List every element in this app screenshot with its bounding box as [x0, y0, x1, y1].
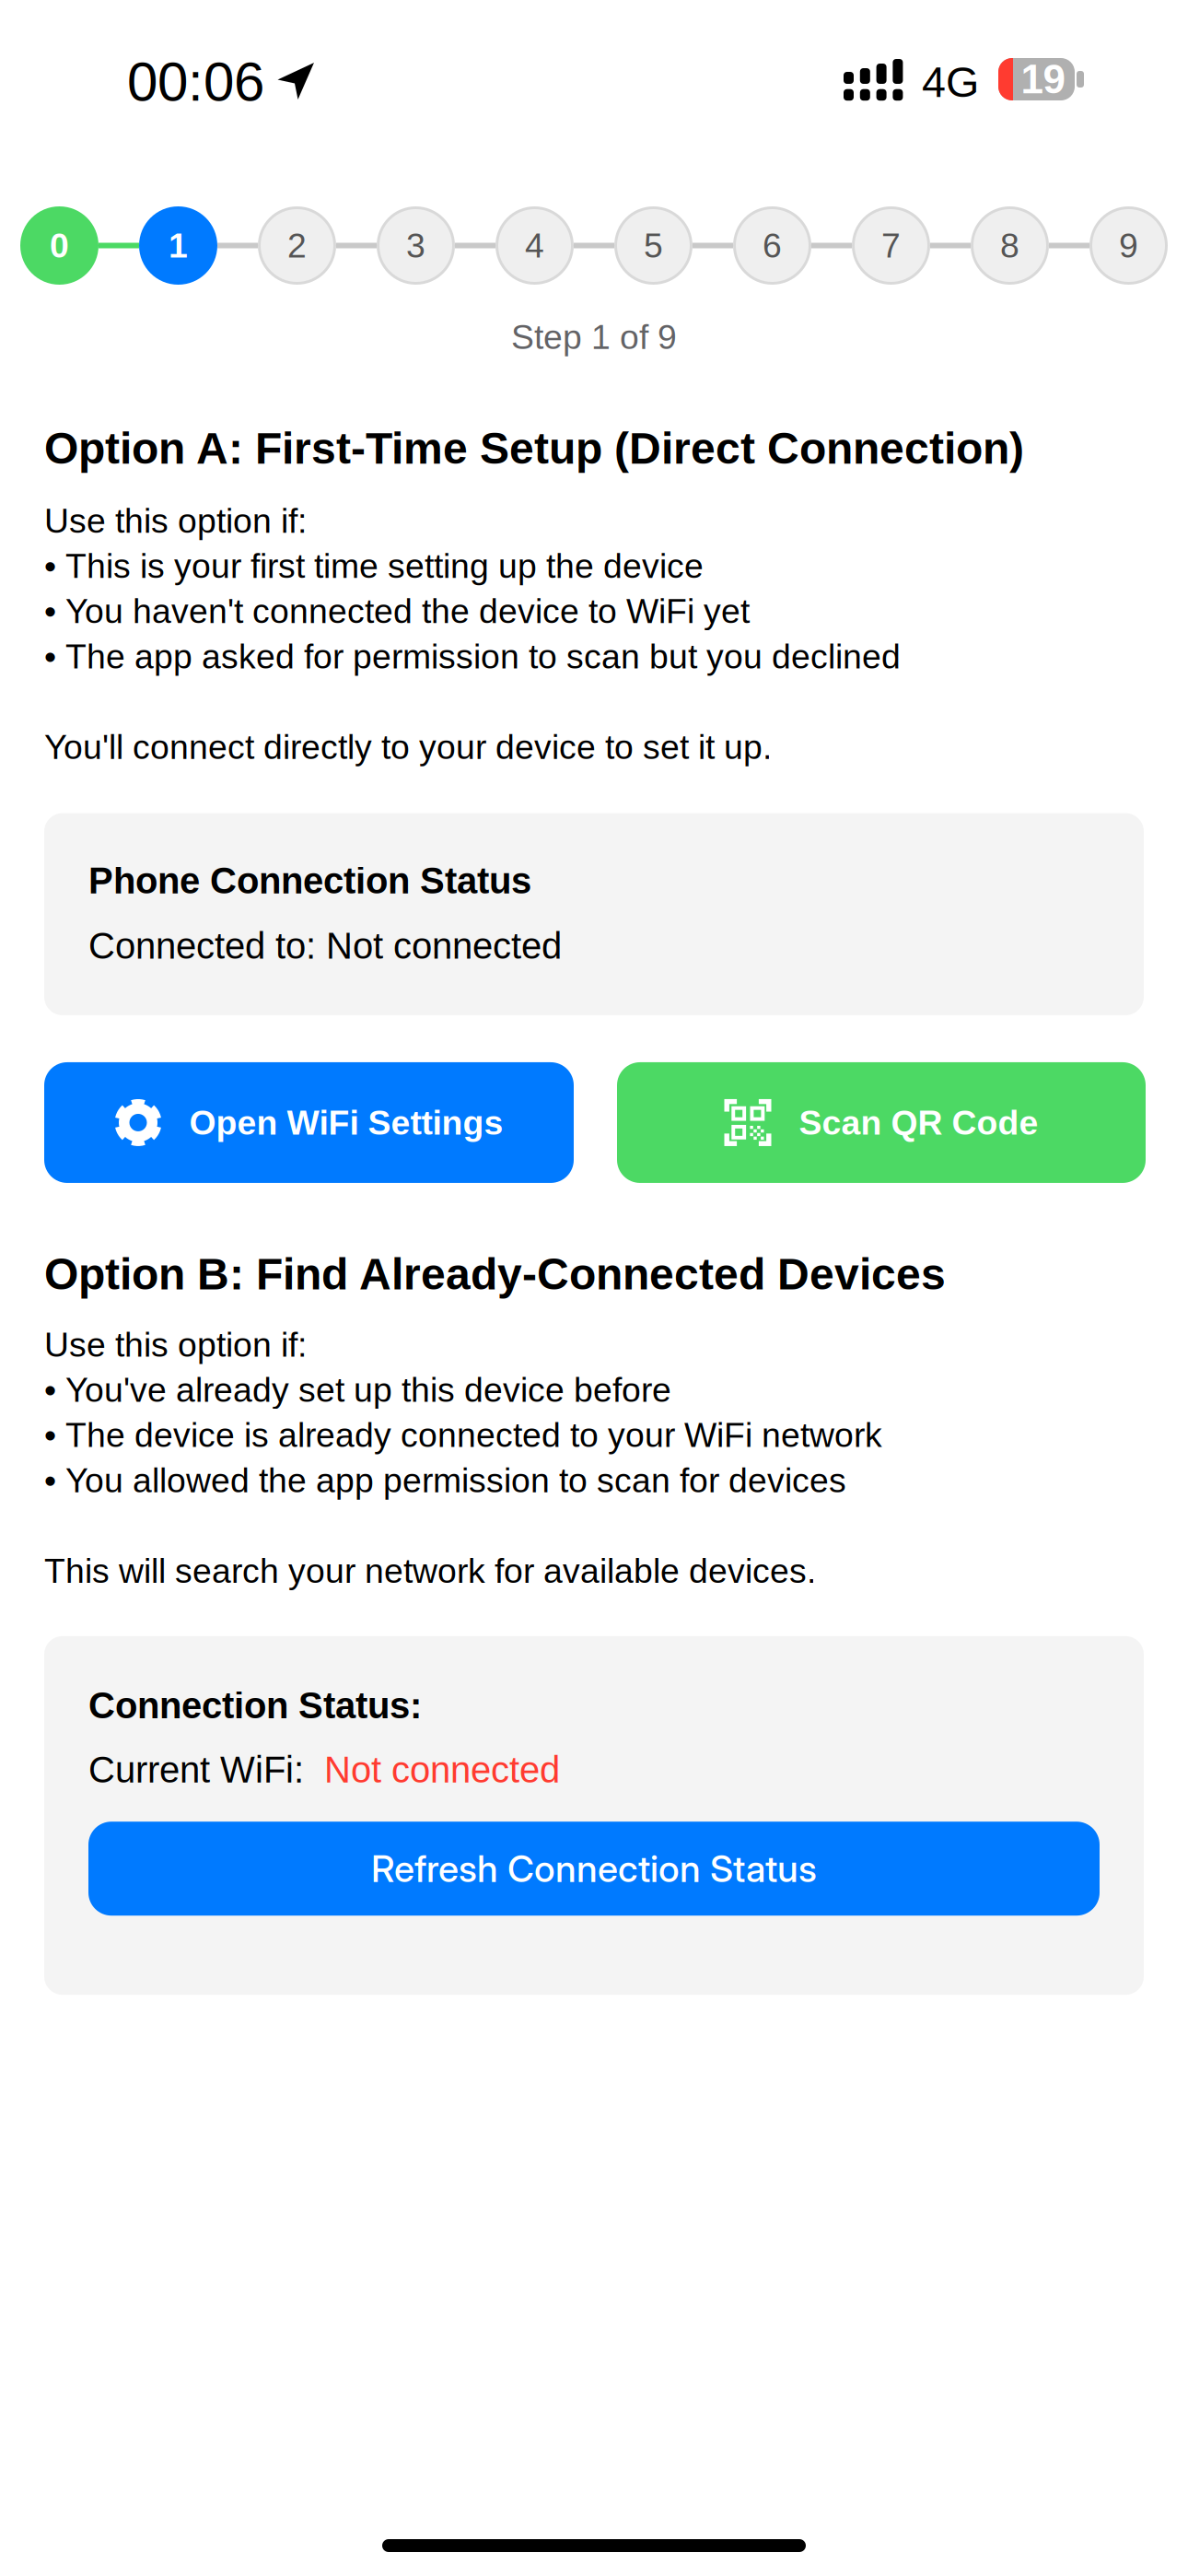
staticText: 7	[881, 226, 901, 265]
staticText: Option B: Find Already-Connected Devices	[44, 1249, 946, 1299]
staticText: Phone Connection Status	[88, 860, 531, 901]
staticText: Not connected	[324, 1749, 560, 1790]
staticText: Refresh Connection Status	[371, 1846, 817, 1891]
staticText: Current WiFi:	[88, 1749, 324, 1790]
staticText: Scan QR Code	[799, 1103, 1038, 1142]
staticText: 0	[50, 226, 69, 265]
staticText: 9	[1119, 226, 1138, 265]
staticText: Use this option if: • You've already set…	[44, 1325, 882, 1590]
staticText: Option A: First-Time Setup (Direct Conne…	[44, 424, 1024, 473]
staticText: Connected to: Not connected	[88, 925, 562, 966]
staticText: 4	[525, 226, 544, 265]
staticText: 8	[1000, 226, 1019, 265]
staticText: Use this option if: • This is your first…	[44, 501, 901, 766]
staticText: Connection Status:	[88, 1685, 422, 1726]
button[interactable]: Open WiFi Settings	[44, 1062, 574, 1183]
staticText: Step 1 of 9	[511, 318, 677, 356]
staticText: 00:06	[127, 51, 264, 112]
staticText: 6	[763, 226, 782, 265]
button[interactable]: Scan QR Code	[617, 1062, 1146, 1183]
button[interactable]: Refresh Connection Status	[88, 1822, 1100, 1916]
staticText: 19	[1021, 57, 1065, 102]
staticText: 2	[287, 226, 307, 265]
staticText: 1	[169, 226, 188, 265]
staticText: 5	[644, 226, 663, 265]
staticText: 3	[406, 226, 425, 265]
staticText: Open WiFi Settings	[189, 1103, 503, 1142]
staticText: 4G	[922, 58, 979, 106]
